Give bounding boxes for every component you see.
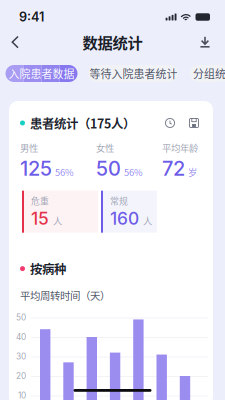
staticText: 40	[16, 332, 26, 342]
staticText: 56%	[55, 165, 74, 179]
staticText: 10	[18, 390, 26, 400]
staticText: 等待入院患者统计	[89, 66, 177, 81]
button[interactable]: 保存	[187, 116, 201, 130]
button[interactable]: 时间范围	[163, 116, 177, 130]
staticText: 平均周转时间（天）	[20, 288, 110, 303]
staticText: 岁	[188, 165, 197, 179]
staticText: 入院患者数据	[8, 66, 74, 81]
staticText: 按病种	[30, 260, 66, 278]
staticText: 患者统计（175人）	[30, 114, 135, 132]
staticText: 125	[20, 156, 52, 181]
staticText: 72	[162, 156, 185, 181]
staticText: 数据统计	[82, 31, 142, 53]
staticText: 9:41	[19, 9, 44, 25]
staticText: 平均年龄	[162, 141, 198, 154]
staticText: 50	[96, 156, 121, 181]
button[interactable]: 分组统	[189, 65, 225, 82]
staticText: 分组统	[193, 66, 225, 81]
staticText: 15	[31, 208, 49, 229]
staticText: 男性	[20, 141, 38, 154]
staticText: 56%	[124, 165, 143, 179]
button[interactable]: 下载	[192, 29, 218, 55]
staticText: 50	[16, 312, 26, 322]
staticText: 160	[110, 208, 139, 229]
button[interactable]: 等待入院患者统计	[88, 65, 178, 82]
staticText: 常规	[110, 194, 128, 207]
staticText: 30	[16, 351, 26, 361]
staticText: 人	[53, 214, 62, 227]
button[interactable]: 入院患者数据	[5, 65, 77, 82]
staticText: 人	[143, 214, 152, 227]
staticText: 20	[16, 371, 26, 381]
button[interactable]: 返回	[2, 29, 28, 55]
staticText: 危重	[31, 194, 49, 207]
staticText: 女性	[96, 141, 114, 154]
